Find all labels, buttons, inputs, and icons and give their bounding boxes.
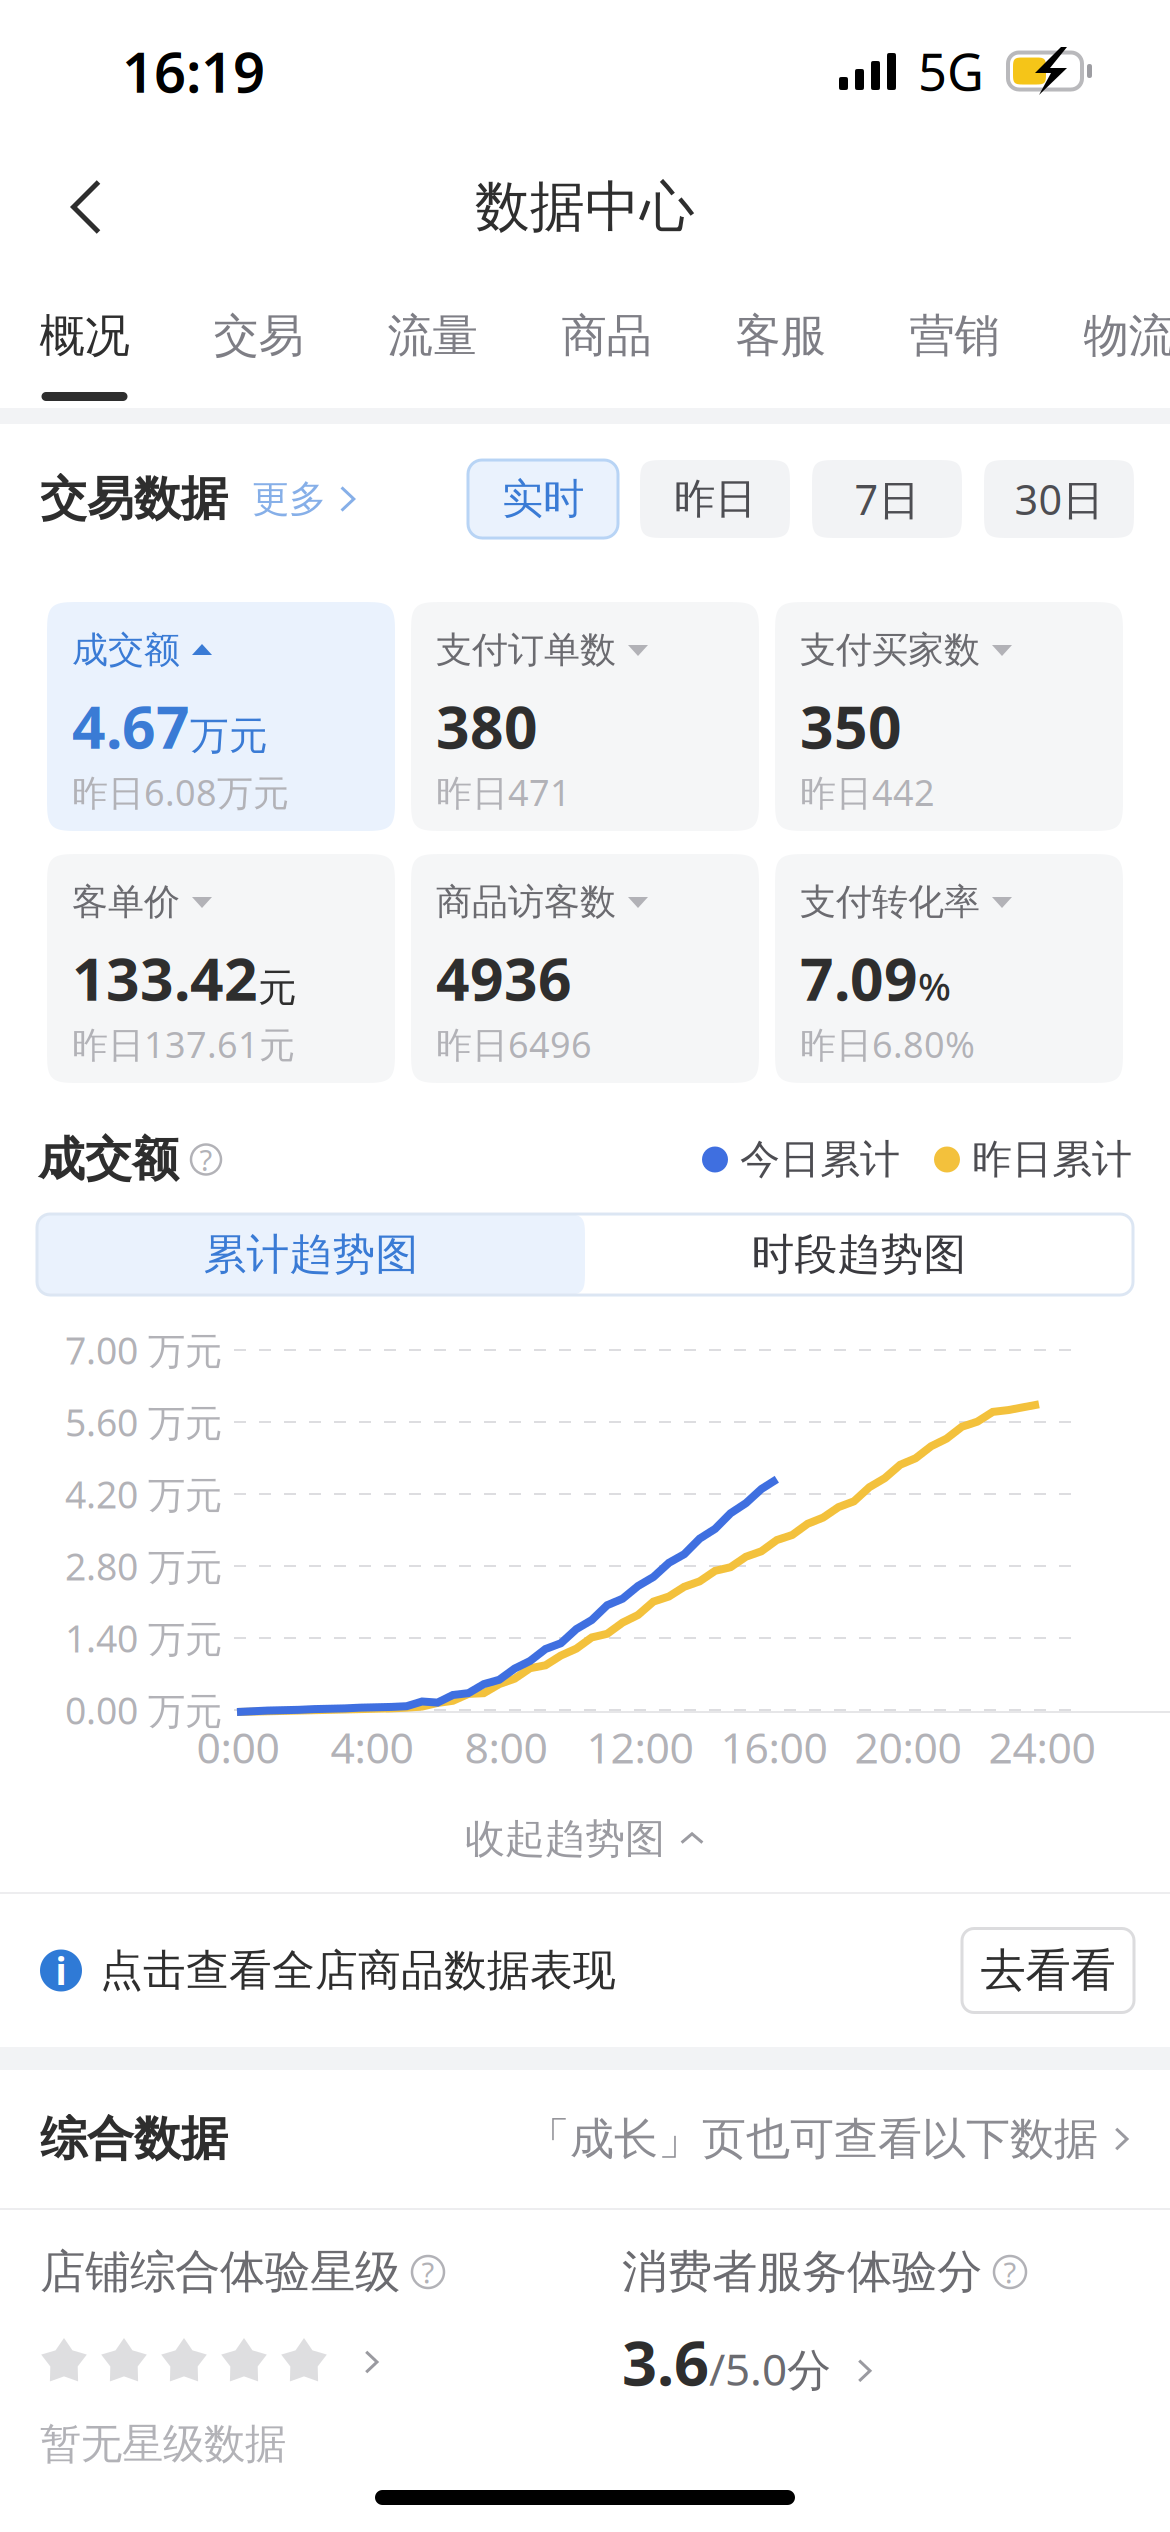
- staticText: 店铺综合体验星级: [40, 2244, 400, 2300]
- staticText: 暂无星级数据: [40, 2419, 286, 2469]
- staticText: 昨日: [674, 474, 756, 524]
- button[interactable]: 30日: [984, 460, 1134, 538]
- staticText: ?: [1003, 2252, 1016, 2291]
- staticText: 数据中心: [475, 173, 695, 240]
- staticText: 收起趋势图: [465, 1814, 665, 1863]
- staticText: 流量: [387, 308, 477, 364]
- button[interactable]: 3.6: [622, 2318, 879, 2406]
- staticText: 「成长」页也可查看以下数据: [526, 2112, 1098, 2166]
- staticText: 昨日6.80%: [800, 1020, 975, 1068]
- staticText: 5.60 万元: [65, 1397, 222, 1447]
- staticText: 0:00: [196, 1719, 279, 1775]
- staticText: 概况: [39, 308, 129, 364]
- staticText: 8:00: [464, 1719, 547, 1775]
- staticText: 昨日6.08万元: [72, 768, 289, 816]
- staticText: 昨日累计: [972, 1135, 1132, 1184]
- staticText: 综合数据: [40, 2110, 228, 2168]
- staticText: 30日: [1014, 472, 1103, 526]
- staticText: 3.6: [622, 2321, 709, 2403]
- button[interactable]: 更多: [228, 454, 364, 544]
- staticText: /5.0分: [709, 2339, 831, 2398]
- button[interactable]: 时段趋势图: [585, 1214, 1133, 1295]
- staticText: 更多: [252, 476, 326, 522]
- staticText: 今日累计: [740, 1135, 900, 1184]
- button[interactable]: 客服: [693, 272, 867, 408]
- staticText: %: [918, 960, 951, 1011]
- button[interactable]: 累计趋势图: [37, 1214, 585, 1295]
- staticText: 5G: [918, 37, 984, 105]
- staticText: 物流: [1083, 308, 1170, 364]
- button[interactable]: 昨日: [640, 460, 790, 538]
- staticText: 交易数据: [40, 470, 228, 528]
- button[interactable]: 去看看: [962, 1928, 1134, 2012]
- staticText: 12:00: [586, 1719, 693, 1775]
- staticText: 商品访客数: [436, 880, 616, 924]
- staticText: 实时: [502, 474, 584, 524]
- staticText: 133.42: [72, 939, 258, 1017]
- staticText: 商品: [561, 308, 651, 364]
- staticText: 营销: [909, 308, 999, 364]
- button[interactable]: 概况: [0, 272, 171, 408]
- staticText: 1.40 万元: [65, 1613, 222, 1663]
- staticText: 0.00 万元: [65, 1685, 222, 1735]
- staticText: 7.09: [800, 939, 918, 1017]
- button[interactable]: 成交额: [47, 602, 395, 831]
- button[interactable]: 支付买家数: [775, 602, 1123, 831]
- staticText: 成交额: [72, 628, 180, 672]
- staticText: 点击查看全店商品数据表现: [100, 1944, 616, 1997]
- staticText: 7日: [854, 472, 919, 526]
- button[interactable]: 7日: [812, 460, 962, 538]
- staticText: 万元: [190, 712, 268, 760]
- button[interactable]: 交易: [171, 272, 345, 408]
- staticText: ?: [199, 1140, 212, 1179]
- button[interactable]: 支付转化率: [775, 854, 1123, 1083]
- button[interactable]: [40, 2318, 386, 2406]
- staticText: 24:00: [988, 1719, 1095, 1775]
- staticText: 7.00 万元: [65, 1325, 222, 1375]
- staticText: 昨日137.61元: [72, 1020, 295, 1068]
- staticText: 350: [800, 687, 902, 765]
- button[interactable]: 商品: [519, 272, 693, 408]
- button[interactable]: 支付订单数: [411, 602, 759, 831]
- button[interactable]: 收起趋势图: [465, 1786, 705, 1892]
- button[interactable]: 营销: [867, 272, 1041, 408]
- button[interactable]: Back: [26, 142, 146, 272]
- staticText: 支付转化率: [800, 880, 980, 924]
- staticText: 支付买家数: [800, 628, 980, 672]
- button[interactable]: 流量: [345, 272, 519, 408]
- staticText: 4.20 万元: [65, 1469, 222, 1519]
- staticText: 2.80 万元: [65, 1541, 222, 1591]
- staticText: 消费者服务体验分: [622, 2244, 982, 2300]
- button[interactable]: 实时: [468, 460, 618, 538]
- button[interactable]: 「成长」页也可查看以下数据: [526, 2084, 1136, 2194]
- staticText: 4.67: [72, 687, 190, 765]
- staticText: 4:00: [330, 1719, 413, 1775]
- button[interactable]: 客单价: [47, 854, 395, 1083]
- staticText: 380: [436, 687, 538, 765]
- staticText: 16:00: [720, 1719, 827, 1775]
- staticText: 成交额: [38, 1131, 179, 1188]
- staticText: 20:00: [854, 1719, 961, 1775]
- staticText: 4936: [436, 939, 572, 1017]
- staticText: 元: [258, 964, 297, 1012]
- staticText: 累计趋势图: [203, 1228, 418, 1281]
- staticText: 交易: [213, 308, 303, 364]
- button[interactable]: 物流: [1041, 272, 1170, 408]
- staticText: 昨日442: [800, 768, 935, 816]
- staticText: 客服: [735, 308, 825, 364]
- button[interactable]: 商品访客数: [411, 854, 759, 1083]
- staticText: 昨日471: [436, 768, 571, 816]
- staticText: 客单价: [72, 880, 180, 924]
- staticText: 支付订单数: [436, 628, 616, 672]
- staticText: 昨日6496: [436, 1020, 592, 1068]
- staticText: 16:19: [122, 34, 265, 108]
- staticText: i: [55, 1946, 66, 1995]
- staticText: ?: [421, 2252, 434, 2291]
- staticText: 去看看: [980, 1943, 1115, 1998]
- staticText: 时段趋势图: [751, 1228, 966, 1281]
